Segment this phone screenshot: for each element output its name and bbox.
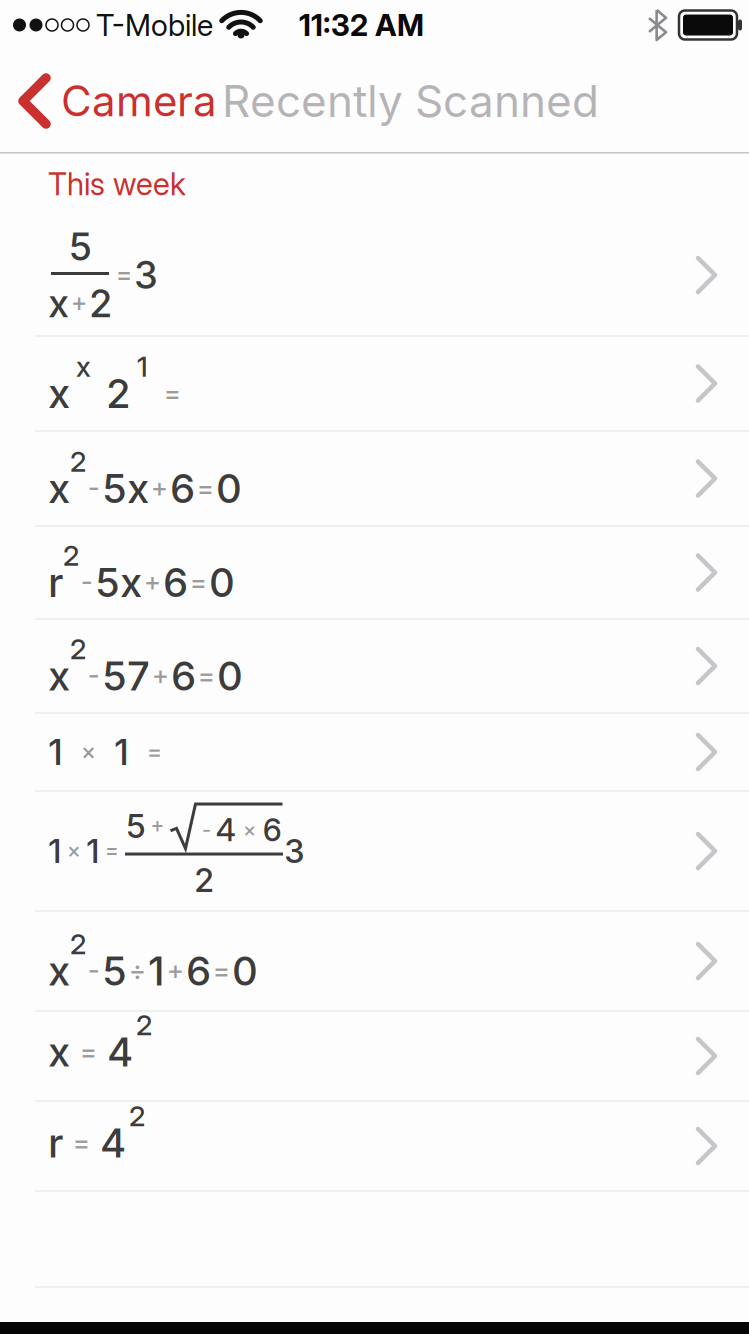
button[interactable]: x2 - 5x + 6 = 0 <box>0 431 749 525</box>
staticText: 3 <box>284 831 305 870</box>
staticText: T-Mobile <box>96 7 213 43</box>
staticText: x2 - 57 + 6 = 0 <box>48 632 243 699</box>
button[interactable]: r2 - 5x + 6 = 0 <box>0 526 749 618</box>
staticText: x = 42 <box>48 1008 152 1075</box>
button[interactable]: r = 42 <box>0 1101 749 1190</box>
staticText: 1 × 1 = <box>48 731 173 773</box>
button[interactable]: 1 × 1 = <box>0 791 749 910</box>
button[interactable]: x2 - 57 + 6 = 0 <box>0 619 749 712</box>
staticText: xx 21 = <box>48 350 191 417</box>
button[interactable]: Back to Camera <box>0 76 217 126</box>
staticText: Recently Scanned <box>222 75 599 127</box>
staticText: - 4 × 6 <box>197 812 282 848</box>
staticText: r2 - 5x + 6 = 0 <box>48 539 235 606</box>
staticText: 11:32 AM <box>299 7 424 43</box>
staticText: This week <box>48 166 186 202</box>
button[interactable]: x = 42 <box>0 1011 749 1100</box>
staticText: x2 - 5 ÷ 1 + 6 = 0 <box>48 927 258 994</box>
staticText: Camera <box>61 76 217 126</box>
staticText: r = 42 <box>48 1099 145 1166</box>
button[interactable]: x2 - 5 ÷ 1 + 6 = 0 <box>0 911 749 1010</box>
staticText: 2 <box>194 860 214 899</box>
button[interactable]: 1 × 1 = <box>0 713 749 790</box>
button[interactable]: 5 <box>0 214 749 335</box>
button[interactable]: xx 21 = <box>0 336 749 430</box>
staticText: x + 2 <box>48 281 112 326</box>
staticText: 5 <box>68 224 91 269</box>
staticText: = 3 <box>114 253 158 297</box>
staticText: 1 × 1 = <box>48 831 124 870</box>
staticText: x2 - 5x + 6 = 0 <box>48 445 242 512</box>
staticText: 5 + <box>125 807 169 845</box>
